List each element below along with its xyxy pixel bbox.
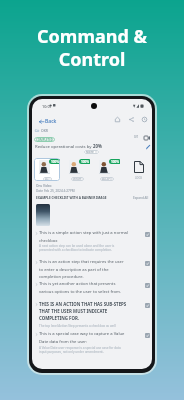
staticText: OKR — [41, 128, 48, 133]
button[interactable]: 100% — [34, 158, 60, 181]
staticText: This is a simple action step with just a… — [39, 230, 128, 243]
staticText: Ons Video — [36, 184, 52, 188]
button[interactable]: Share — [127, 115, 136, 124]
staticText: Back — [45, 118, 57, 125]
button[interactable]: More — [86, 150, 97, 154]
staticText: The top level Action Step presents a che… — [39, 324, 128, 328]
staticText: COMPLETED — [36, 138, 53, 142]
button[interactable]: 100% — [94, 158, 120, 181]
staticText: ACT — [45, 177, 50, 181]
staticText: Reduce operational costs by — [35, 143, 93, 149]
button[interactable]: History — [140, 115, 149, 124]
staticText: ACCEPT — [102, 177, 112, 181]
button[interactable]: This is an action step that requires the… — [32, 259, 152, 279]
staticText: Command & Control — [0, 24, 184, 71]
staticText: Date Feb 25, 2024 4:27PM — [36, 189, 75, 193]
staticText: A next action step can be used alone and… — [39, 244, 128, 252]
button[interactable]: Expand All — [133, 196, 149, 200]
staticText: 0/1 — [134, 135, 139, 139]
button[interactable]: This is yet another action that presents… — [32, 281, 152, 301]
staticText: This is an action step that requires the… — [39, 259, 128, 279]
staticText: VERIFY — [73, 177, 82, 181]
staticText: A Value Date user response is a special … — [39, 346, 128, 354]
staticText: This is yet another action that presents… — [39, 281, 128, 294]
button[interactable]: Back — [39, 118, 57, 125]
staticText: 20% — [93, 143, 102, 149]
staticText: More — [86, 150, 94, 154]
button[interactable]: Logs — [129, 158, 148, 181]
staticText: This is a special case way to capture a … — [39, 331, 128, 344]
staticText: THIS IS AN ACTION THAT HAS SUB-STEPS THA… — [39, 301, 128, 321]
staticText: 10:07 — [42, 104, 52, 109]
button[interactable]: This is a special case way to capture a … — [32, 331, 152, 351]
staticText: LOGS — [135, 176, 142, 180]
button[interactable]: Home — [113, 115, 122, 124]
button[interactable]: 100% — [64, 158, 90, 181]
staticText: 100% — [51, 160, 60, 164]
button[interactable]: This is a simple action step with just a… — [32, 230, 152, 250]
button[interactable]: THIS IS AN ACTION THAT HAS SUB-STEPS THA… — [32, 301, 152, 321]
staticText: EXAMPLE CHECKLIST WITH A BANNER IMAGE — [36, 196, 107, 200]
staticText: 100% — [81, 160, 90, 164]
staticText: 100% — [111, 160, 120, 164]
